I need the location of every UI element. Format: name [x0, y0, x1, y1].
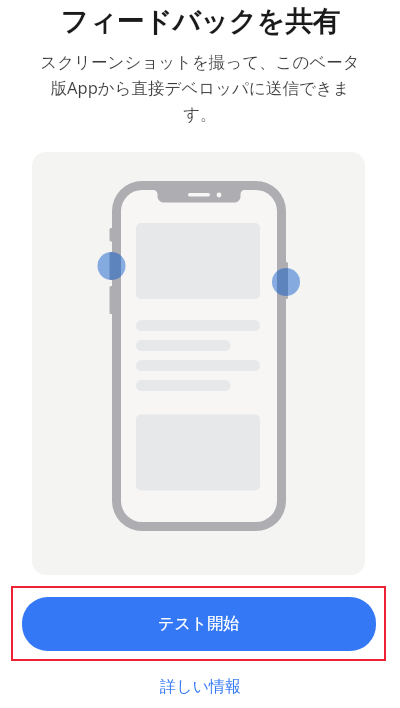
staticText: テスト開始: [158, 614, 240, 634]
other: Phone screenshot illustration: [32, 152, 365, 575]
staticText: 詳しい情報: [160, 677, 241, 697]
button[interactable]: テスト開始: [22, 597, 376, 651]
staticText: フィードバックを共有: [0, 5, 400, 40]
button[interactable]: 詳しい情報: [0, 668, 400, 706]
staticText: スクリーンショットを撮って、このベータ版Appから直接デベロッパに送信できます。: [34, 52, 366, 125]
